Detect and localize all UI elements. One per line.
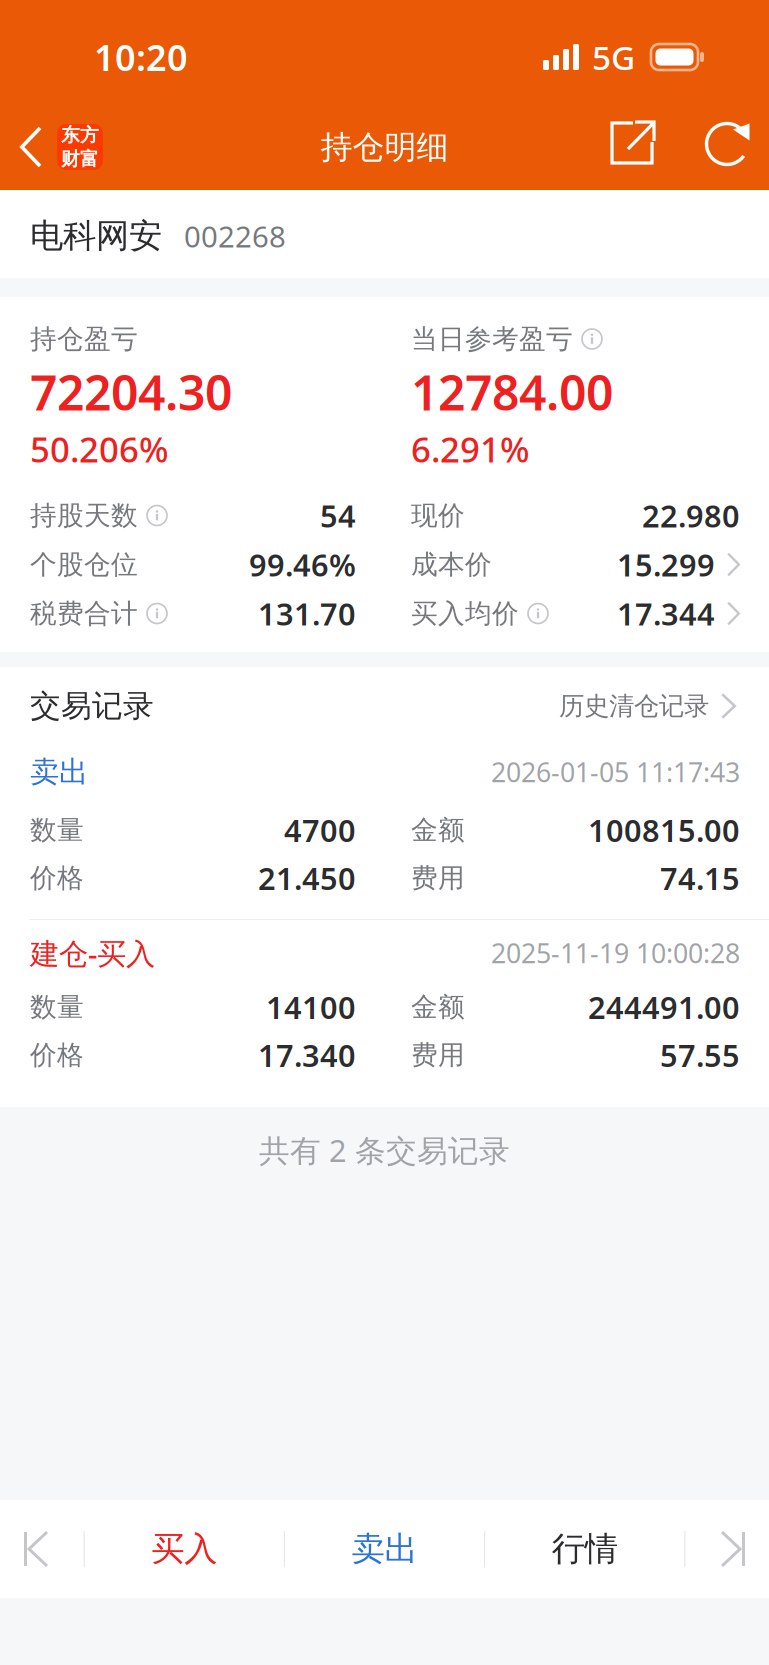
staticText: 74.15 xyxy=(660,858,740,898)
staticText: 131.70 xyxy=(258,593,356,634)
staticText: 个股仓位 xyxy=(30,548,138,581)
staticText: 14100 xyxy=(266,987,356,1027)
staticText: 费用 xyxy=(411,1039,465,1071)
staticText: 持股天数 xyxy=(30,499,138,532)
staticText: 东方 xyxy=(61,124,99,146)
staticText: 17.344 xyxy=(617,593,715,634)
staticText: 57.55 xyxy=(660,1035,740,1075)
staticText: 税费合计 xyxy=(30,597,138,630)
staticText: 002268 xyxy=(184,216,286,255)
button[interactable]: 成本价 xyxy=(411,540,740,589)
button[interactable]: 行情 xyxy=(519,1500,651,1598)
staticText: 共有 2 条交易记录 xyxy=(259,1130,510,1170)
button[interactable]: 分享 xyxy=(569,96,695,190)
staticText: 6.291% xyxy=(411,426,530,472)
button[interactable]: 返回 东方财富 xyxy=(0,96,117,190)
button[interactable]: 卖出 xyxy=(318,1500,450,1598)
staticText: 100815.00 xyxy=(588,810,740,850)
staticText: 50.206% xyxy=(30,426,169,472)
staticText: 财富 xyxy=(61,147,99,170)
staticText: 行情 xyxy=(552,1528,618,1569)
staticText: 买入 xyxy=(151,1528,217,1569)
staticText: 21.450 xyxy=(258,858,356,898)
staticText: 现价 xyxy=(411,499,465,532)
staticText: 22.980 xyxy=(642,495,740,536)
staticText: 4700 xyxy=(284,810,356,850)
staticText: 建仓-买入 xyxy=(30,933,155,972)
staticText: 数量 xyxy=(30,814,84,846)
staticText: 当日参考盈亏 xyxy=(411,323,573,355)
staticText: 72204.30 xyxy=(30,360,232,424)
staticText: 15.299 xyxy=(617,544,715,585)
staticText: 54 xyxy=(320,495,356,536)
staticText: 持仓明细 xyxy=(320,128,448,167)
staticText: 数量 xyxy=(30,991,84,1023)
staticText: 成本价 xyxy=(411,548,492,581)
staticText: 买入均价 xyxy=(411,597,519,630)
staticText: 17.340 xyxy=(258,1035,356,1075)
staticText: 卖出 xyxy=(351,1528,417,1569)
button[interactable]: 刷新 xyxy=(695,96,759,190)
staticText: 持仓盈亏 xyxy=(30,323,138,355)
staticText: 费用 xyxy=(411,862,465,894)
staticText: 金额 xyxy=(411,991,465,1023)
staticText: 2026-01-05 11:17:43 xyxy=(491,754,740,790)
staticText: 5G xyxy=(592,35,635,79)
staticText: 金额 xyxy=(411,814,465,846)
staticText: 价格 xyxy=(30,1039,84,1071)
staticText: 10:20 xyxy=(94,33,188,81)
staticText: 交易记录 xyxy=(30,687,154,725)
staticText: 99.46% xyxy=(249,544,356,585)
button[interactable]: 交易记录 xyxy=(0,681,769,731)
button[interactable]: 买入均价 xyxy=(411,589,740,638)
staticText: 卖出 xyxy=(30,754,88,790)
button[interactable]: 买入 xyxy=(118,1500,250,1598)
staticText: 2025-11-19 10:00:28 xyxy=(491,935,740,971)
staticText: 价格 xyxy=(30,862,84,894)
staticText: 电科网安 xyxy=(30,215,162,256)
staticText: 12784.00 xyxy=(411,360,613,424)
staticText: 244491.00 xyxy=(588,987,740,1027)
staticText: 历史清仓记录 xyxy=(559,690,709,721)
